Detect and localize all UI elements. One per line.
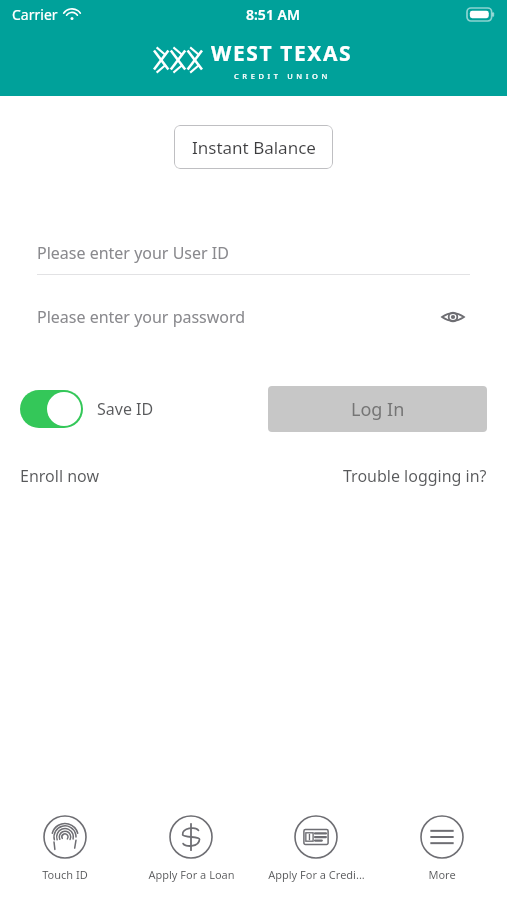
staticText: Please enter your User ID	[37, 242, 229, 264]
staticText: CREDIT UNION	[234, 71, 331, 81]
staticText: Please enter your password	[37, 306, 246, 328]
button[interactable]: Enroll now	[20, 461, 99, 491]
button[interactable]: Please enter your User ID	[37, 232, 470, 274]
button[interactable]: Show password	[436, 300, 470, 334]
staticText: Save ID	[97, 398, 154, 420]
button[interactable]: Save ID	[20, 390, 154, 428]
staticText: 8:51 AM	[246, 5, 300, 24]
staticText: Apply For a Credi...	[268, 867, 365, 882]
staticText: WEST TEXAS	[211, 39, 353, 68]
button[interactable]: Instant Balance	[174, 125, 333, 169]
staticText: Touch ID	[42, 867, 88, 882]
staticText: Instant Balance	[192, 136, 316, 159]
staticText: Apply For a Loan	[148, 867, 235, 882]
staticText: Enroll now	[20, 465, 99, 487]
button[interactable]: Apply For a Credi...	[256, 804, 376, 882]
button[interactable]: Apply For a Loan	[131, 804, 251, 882]
button[interactable]: Please enter your password	[37, 300, 470, 334]
button[interactable]: More	[382, 804, 502, 882]
staticText: Carrier	[12, 5, 58, 24]
staticText: Trouble logging in?	[343, 465, 487, 487]
button[interactable]: Trouble logging in?	[343, 461, 487, 491]
button[interactable]: Touch ID	[5, 804, 125, 882]
button[interactable]: Log In	[268, 386, 487, 432]
staticText: More	[428, 867, 456, 882]
staticText: Log In	[351, 397, 405, 422]
